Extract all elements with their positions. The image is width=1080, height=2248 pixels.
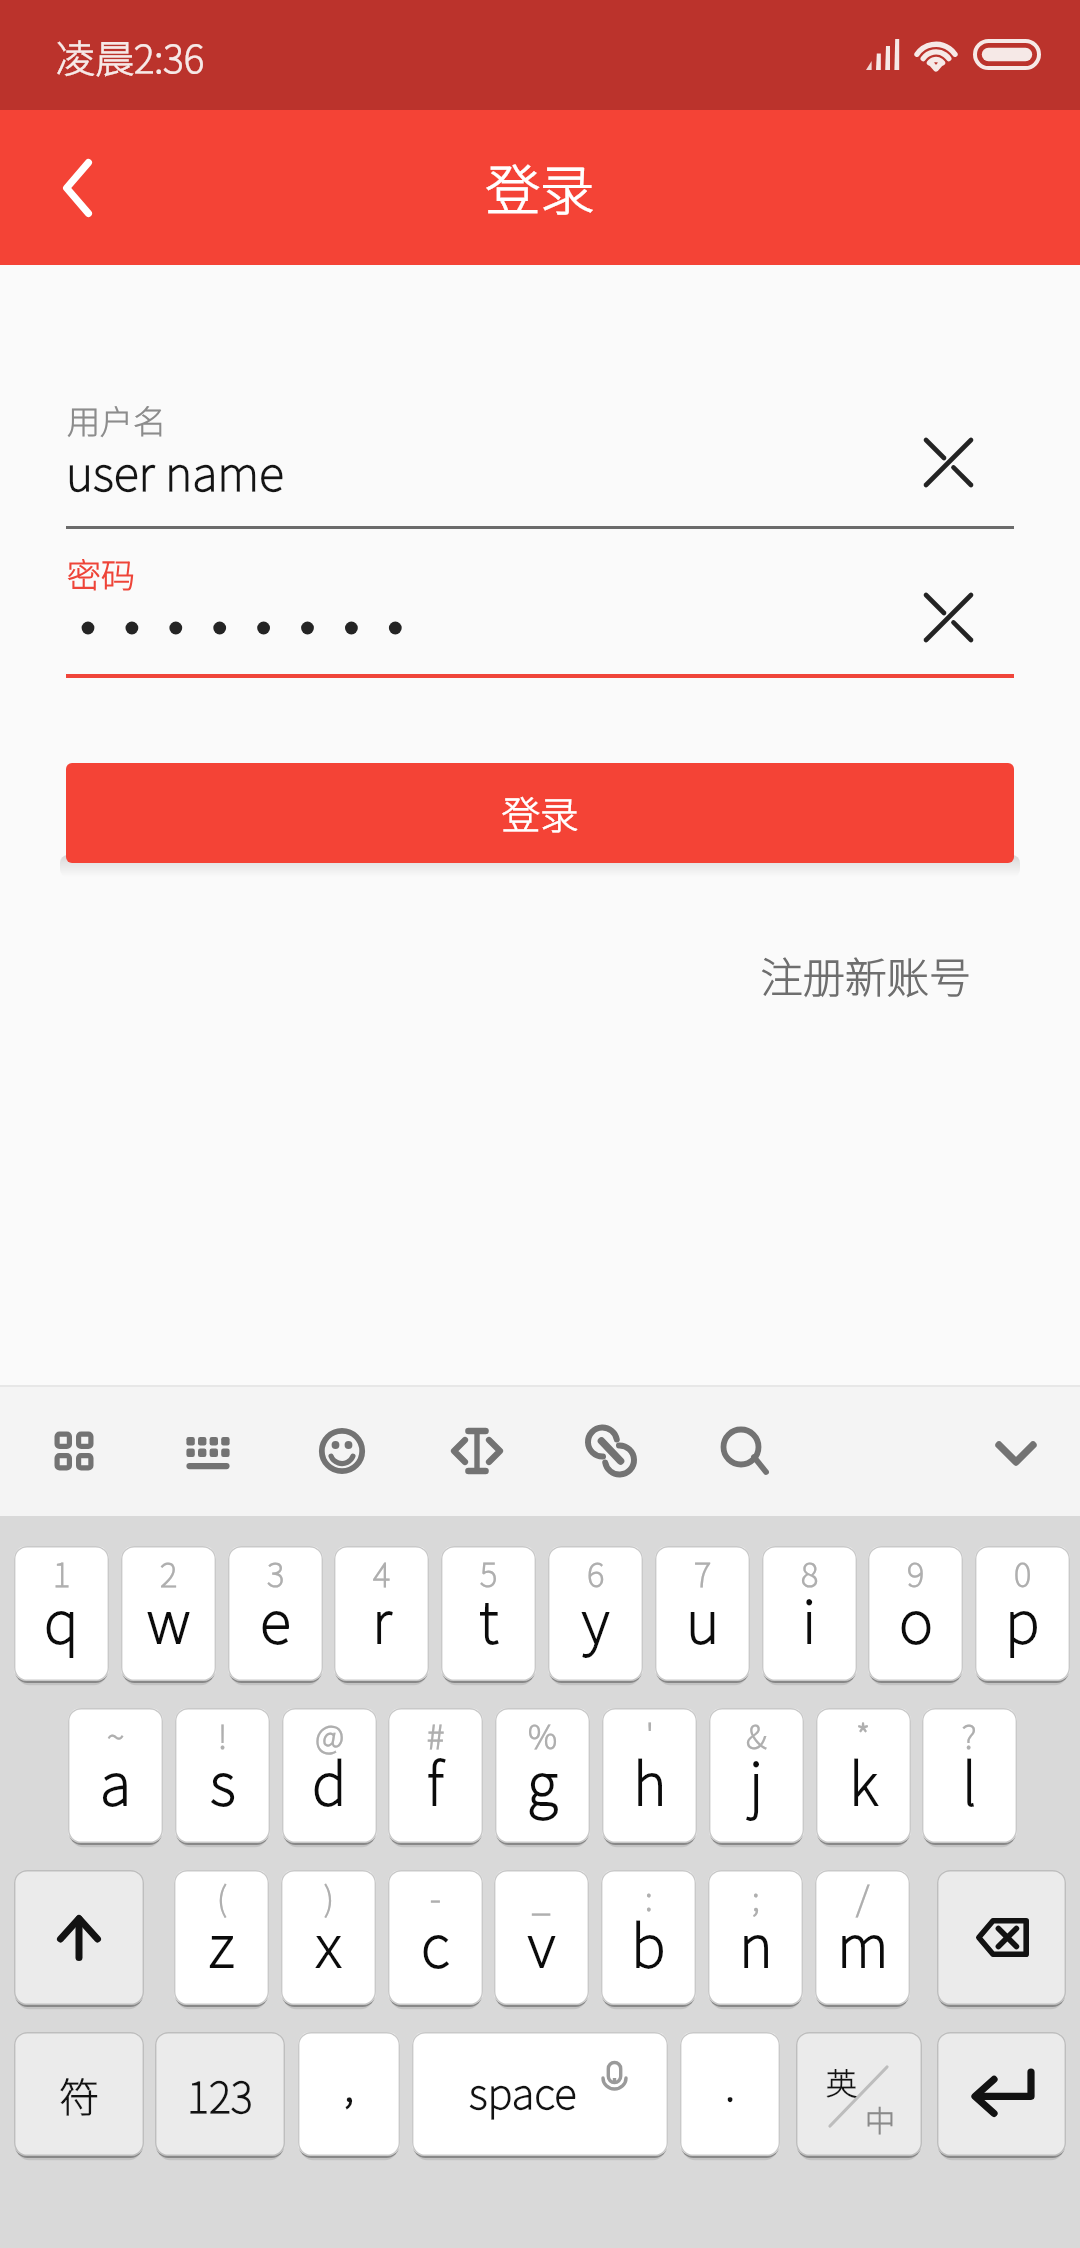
staticText: space <box>469 2060 577 2121</box>
button[interactable]: _ <box>494 1870 589 2005</box>
button[interactable]: 符 <box>14 2032 144 2156</box>
staticText: 6 <box>587 1549 605 1597</box>
button[interactable]: Switch input language <box>796 2032 922 2156</box>
staticText: d <box>312 1738 347 1822</box>
staticText: i <box>802 1576 817 1660</box>
staticText: ! <box>218 1711 228 1759</box>
staticText: j <box>749 1738 764 1822</box>
staticText: e <box>260 1576 291 1660</box>
button[interactable]: ) <box>281 1870 376 2005</box>
button[interactable]: , <box>298 2032 400 2156</box>
staticText: ( <box>217 1873 227 1921</box>
staticText: r <box>372 1576 392 1660</box>
staticText: ~ <box>107 1711 125 1759</box>
staticText: a <box>100 1738 132 1822</box>
button[interactable]: Menu <box>16 1385 132 1516</box>
staticText: g <box>527 1738 558 1822</box>
button[interactable]: ~ <box>68 1708 163 1843</box>
button[interactable]: 3 <box>228 1546 323 1681</box>
staticText: * <box>856 1711 871 1759</box>
staticText: 中 <box>865 2097 895 2140</box>
button[interactable]: Backspace <box>937 1870 1066 2005</box>
staticText: 注册新账号 <box>761 944 972 1005</box>
staticText: . <box>725 2050 736 2114</box>
button[interactable]: ; <box>708 1870 803 2005</box>
staticText: , <box>344 2050 355 2114</box>
button[interactable]: ! <box>175 1708 270 1843</box>
button[interactable]: % <box>495 1708 590 1843</box>
button[interactable]: 5 <box>441 1546 536 1681</box>
staticText: 3 <box>267 1549 285 1597</box>
button[interactable]: 注册新账号 <box>745 930 988 1018</box>
staticText: v <box>528 1900 556 1984</box>
button[interactable]: Clear text <box>894 563 1002 671</box>
button[interactable]: 0 <box>975 1546 1070 1681</box>
button[interactable]: # <box>388 1708 483 1843</box>
button[interactable]: Shift <box>14 1870 144 2005</box>
staticText: ) <box>324 1873 334 1921</box>
staticText: 登录 <box>502 785 579 840</box>
staticText: 7 <box>694 1549 712 1597</box>
button[interactable]: * <box>816 1708 911 1843</box>
staticText: user name <box>66 436 284 504</box>
staticText: w <box>147 1576 191 1660</box>
staticText: l <box>962 1738 977 1822</box>
button[interactable]: 1 <box>14 1546 109 1681</box>
button[interactable]: Clipboard <box>553 1385 669 1516</box>
staticText: ; <box>752 1873 760 1921</box>
staticText: x <box>316 1900 342 1984</box>
button[interactable]: 7 <box>655 1546 750 1681</box>
staticText: 8 <box>801 1549 819 1597</box>
button[interactable]: ? <box>922 1708 1017 1843</box>
staticText: p <box>1005 1576 1040 1660</box>
staticText: 凌晨2:36 <box>56 28 204 84</box>
staticText: 用户名 <box>67 396 166 444</box>
staticText: n <box>739 1900 773 1984</box>
button[interactable]: space <box>412 2032 668 2156</box>
staticText: q <box>44 1576 79 1660</box>
button[interactable]: 4 <box>334 1546 429 1681</box>
staticText: 密码 <box>67 549 135 598</box>
button[interactable]: Clear text <box>894 408 1002 516</box>
button[interactable]: Hide keyboard <box>958 1385 1074 1516</box>
staticText: ? <box>962 1711 977 1759</box>
staticText: / <box>856 1873 870 1921</box>
staticText: c <box>421 1900 450 1984</box>
staticText: & <box>746 1711 767 1759</box>
button[interactable]: & <box>709 1708 804 1843</box>
staticText: 0 <box>1014 1549 1032 1597</box>
button[interactable]: 123 <box>155 2032 285 2156</box>
staticText: 2 <box>160 1549 178 1597</box>
button[interactable]: ' <box>602 1708 697 1843</box>
button[interactable]: Back <box>17 128 137 248</box>
staticText: _ <box>532 1873 551 1921</box>
button[interactable]: 9 <box>868 1546 963 1681</box>
staticText: b <box>631 1900 666 1984</box>
button[interactable]: @ <box>282 1708 377 1843</box>
button[interactable]: : <box>601 1870 696 2005</box>
button[interactable]: . <box>680 2032 780 2156</box>
button[interactable]: / <box>815 1870 910 2005</box>
button[interactable]: Emoji <box>284 1385 400 1516</box>
staticText: @ <box>315 1711 345 1759</box>
staticText: 1 <box>53 1549 71 1597</box>
staticText: : <box>645 1873 653 1921</box>
button[interactable]: 6 <box>548 1546 643 1681</box>
button[interactable]: 8 <box>762 1546 857 1681</box>
button[interactable]: ( <box>174 1870 269 2005</box>
button[interactable]: Keyboard layout <box>150 1385 266 1516</box>
staticText: % <box>528 1711 558 1759</box>
staticText: ' <box>646 1711 654 1759</box>
button[interactable]: 2 <box>121 1546 216 1681</box>
staticText: f <box>427 1738 444 1822</box>
button[interactable]: Search <box>687 1385 803 1516</box>
button[interactable]: Enter <box>937 2032 1066 2156</box>
staticText: t <box>479 1576 499 1660</box>
button[interactable]: Move cursor <box>419 1385 535 1516</box>
button[interactable]: - <box>388 1870 483 2005</box>
staticText: m <box>837 1900 889 1984</box>
staticText: - <box>430 1873 441 1921</box>
staticText: 登录 <box>486 147 594 225</box>
staticText: 4 <box>373 1549 391 1597</box>
button[interactable]: 登录 <box>66 763 1014 863</box>
